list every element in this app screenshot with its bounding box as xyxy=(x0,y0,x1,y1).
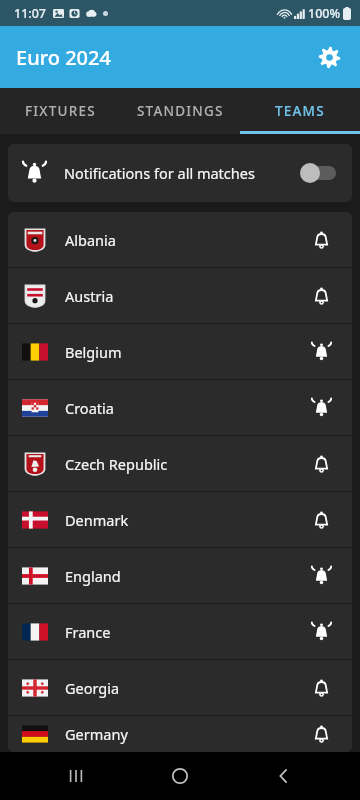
button[interactable]: TEAMS xyxy=(240,88,360,134)
button[interactable]: Belgium xyxy=(8,324,352,379)
button[interactable]: Toggle all match notifications xyxy=(300,162,338,184)
staticText: Euro 2024 xyxy=(16,44,111,71)
button[interactable]: STANDINGS xyxy=(120,88,240,134)
button[interactable]: Notifications for Czech Republic xyxy=(304,447,338,481)
staticText: Czech Republic xyxy=(65,454,168,474)
button[interactable]: Croatia xyxy=(8,380,352,435)
button[interactable]: Czech Republic xyxy=(8,436,352,491)
staticText: Denmark xyxy=(65,510,129,530)
staticText: England xyxy=(65,566,121,586)
button[interactable]: Austria xyxy=(8,268,352,323)
button[interactable]: Notifications for Georgia xyxy=(304,671,338,705)
staticText: France xyxy=(65,622,111,642)
staticText: Germany xyxy=(65,724,128,744)
button[interactable]: Albania xyxy=(8,212,352,267)
button[interactable]: England xyxy=(8,548,352,603)
button[interactable]: Georgia xyxy=(8,660,352,715)
button[interactable]: Recents xyxy=(48,752,104,800)
button[interactable]: Notifications for England xyxy=(304,559,338,593)
button[interactable]: Notifications for Germany xyxy=(304,717,338,751)
staticText: TEAMS xyxy=(275,102,325,120)
button[interactable]: Home xyxy=(152,752,208,800)
staticText: Georgia xyxy=(65,678,120,698)
staticText: Croatia xyxy=(65,398,114,418)
button[interactable]: Settings xyxy=(306,34,352,80)
button[interactable]: France xyxy=(8,604,352,659)
staticText: Belgium xyxy=(65,342,122,362)
button[interactable]: Denmark xyxy=(8,492,352,547)
staticText: 100% xyxy=(308,5,341,22)
button[interactable]: Notifications for Denmark xyxy=(304,503,338,537)
button[interactable]: Notifications for Austria xyxy=(304,279,338,313)
button[interactable]: Notifications for Belgium xyxy=(304,335,338,369)
staticText: 11:07 xyxy=(14,5,47,22)
staticText: FIXTURES xyxy=(25,102,96,120)
button[interactable]: Notifications for Croatia xyxy=(304,391,338,425)
button[interactable]: Notifications for Albania xyxy=(304,223,338,257)
button[interactable]: FIXTURES xyxy=(0,88,120,134)
button[interactable]: Back xyxy=(256,752,312,800)
staticText: Albania xyxy=(65,230,116,250)
button[interactable]: Germany xyxy=(8,716,352,752)
staticText: Austria xyxy=(65,286,114,306)
staticText: Notifications for all matches xyxy=(64,163,255,183)
button[interactable]: Notifications for France xyxy=(304,615,338,649)
staticText: STANDINGS xyxy=(137,102,224,120)
button[interactable]: Notifications for all matches xyxy=(8,144,352,202)
